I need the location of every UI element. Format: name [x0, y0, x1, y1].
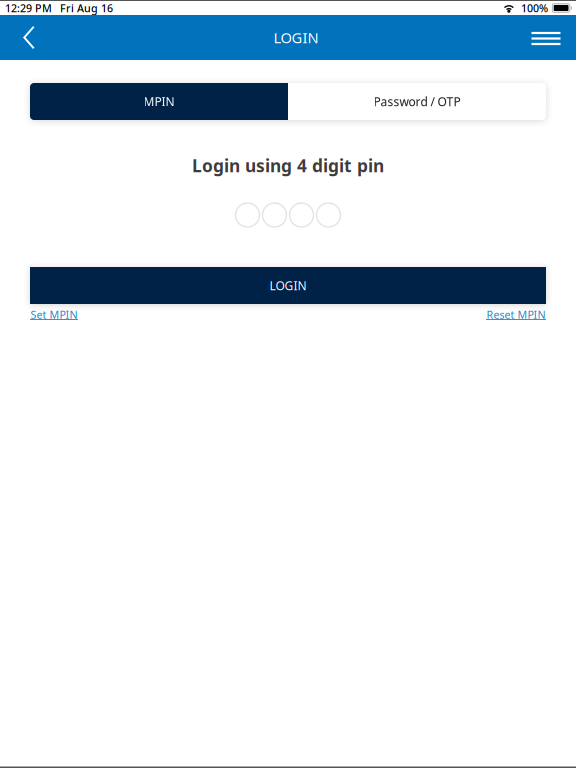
- button[interactable]: LOGIN: [30, 267, 546, 304]
- button[interactable]: Reset MPIN: [486, 309, 546, 320]
- button[interactable]: Password / OTP: [288, 83, 546, 120]
- staticText: Reset MPIN: [486, 307, 545, 322]
- staticText: LOGIN: [269, 277, 306, 293]
- button[interactable]: Back: [9, 15, 49, 60]
- button[interactable]: MPIN: [30, 83, 288, 120]
- staticText: Fri Aug 16: [60, 1, 113, 15]
- button[interactable]: Menu: [526, 15, 566, 60]
- staticText: Login using 4 digit pin: [192, 154, 384, 177]
- button[interactable]: Set MPIN: [30, 309, 78, 320]
- staticText: Set MPIN: [30, 307, 77, 322]
- staticText: LOGIN: [273, 28, 318, 47]
- staticText: MPIN: [143, 93, 174, 109]
- staticText: 100%: [521, 1, 548, 15]
- staticText: 12:29 PM: [5, 1, 52, 15]
- staticText: Password / OTP: [373, 93, 460, 109]
